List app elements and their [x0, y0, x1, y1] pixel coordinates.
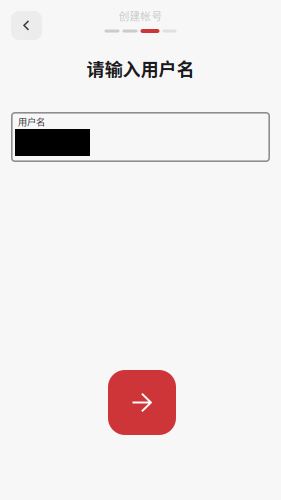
- staticText: 请输入用户名: [86, 55, 194, 81]
- staticText: 创建帐号: [118, 8, 162, 23]
- button[interactable]: Next: [108, 370, 176, 435]
- button[interactable]: Back: [11, 11, 42, 40]
- button[interactable]: 用户名: [11, 112, 270, 162]
- staticText: 用户名: [18, 115, 45, 128]
